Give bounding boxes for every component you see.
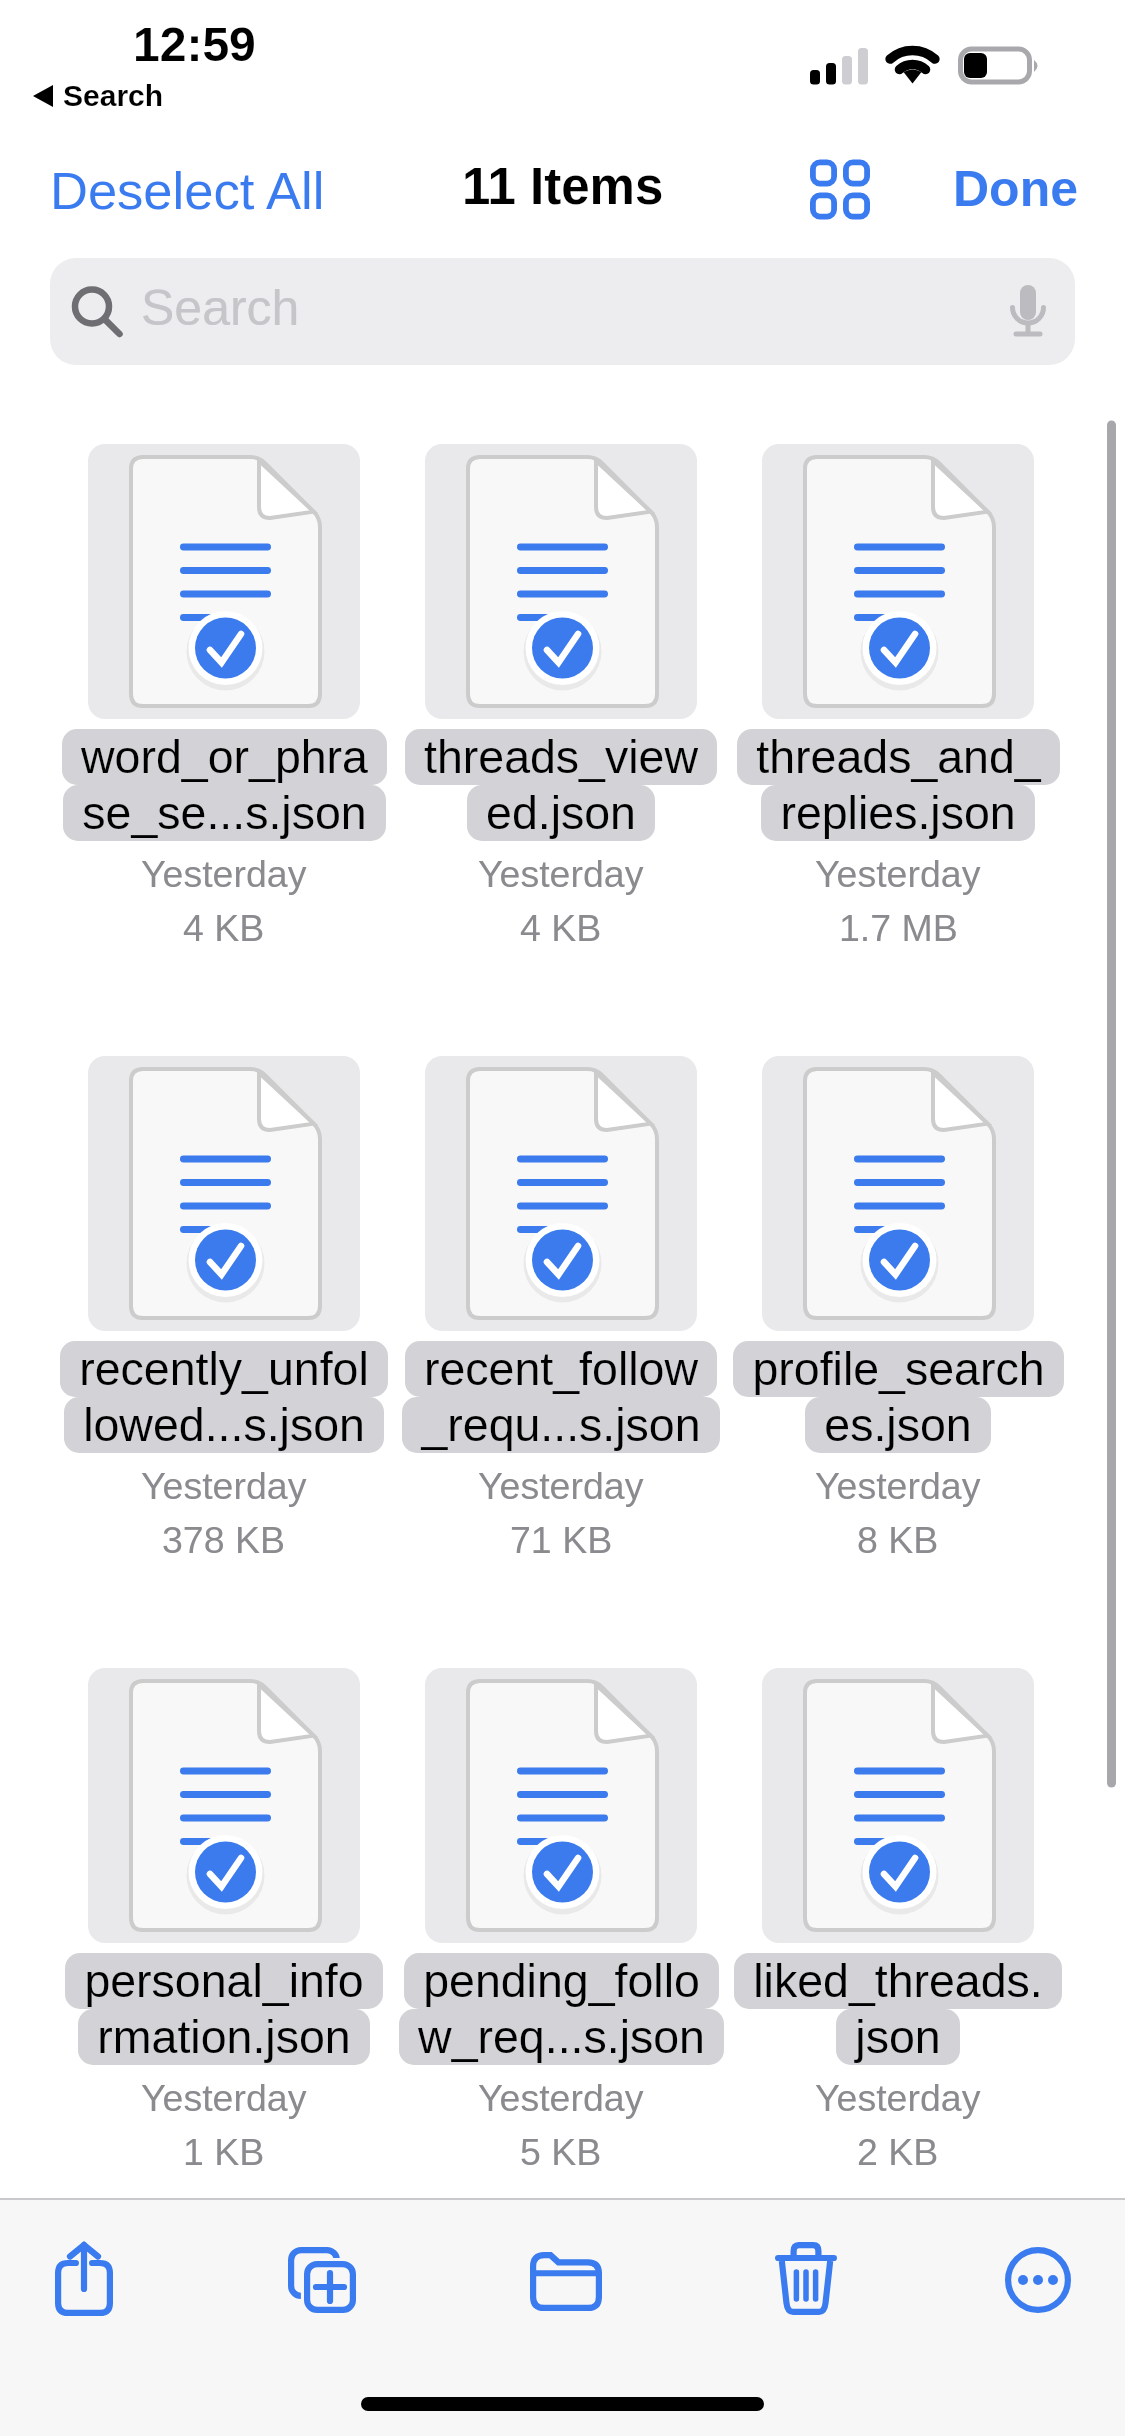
button[interactable]: recently_unfol (28, 1056, 420, 1561)
staticText: _requ...s.json (421, 1399, 701, 1451)
button[interactable]: recent_follow (365, 1056, 757, 1561)
button[interactable]: Switch to grid view (785, 140, 895, 238)
staticText: ed.json (486, 787, 636, 839)
staticText: Yesterday (815, 2077, 981, 2119)
staticText: Done (953, 161, 1078, 217)
staticText: recently_unfol (79, 1343, 369, 1395)
staticText: 71 KB (510, 1519, 613, 1561)
staticText: word_or_phra (81, 731, 368, 783)
staticText: 12:59 (133, 18, 256, 72)
staticText: Search (141, 280, 300, 336)
staticText: Yesterday (815, 1465, 981, 1507)
staticText: rmation.json (97, 2011, 351, 2063)
staticText: Yesterday (815, 853, 981, 895)
staticText: w_req...s.json (418, 2011, 705, 2063)
staticText: se_se...s.json (82, 787, 367, 839)
staticText: es.json (824, 1399, 972, 1451)
button[interactable]: threads_and_ (702, 444, 1094, 949)
staticText: Yesterday (478, 2077, 644, 2119)
button[interactable]: personal_info (28, 1668, 420, 2173)
staticText: Yesterday (141, 853, 307, 895)
button[interactable]: word_or_phra (28, 444, 420, 949)
button[interactable]: Duplicate (258, 2222, 386, 2338)
button[interactable]: Deselect All (50, 161, 325, 220)
staticText: Yesterday (478, 1465, 644, 1507)
button[interactable]: More (974, 2222, 1102, 2338)
staticText: recent_follow (424, 1343, 698, 1395)
staticText: lowed...s.json (83, 1399, 365, 1451)
staticText: 8 KB (857, 1519, 939, 1561)
staticText: 4 KB (183, 907, 265, 949)
button[interactable]: threads_view (365, 444, 757, 949)
button[interactable]: Share (20, 2221, 148, 2337)
button[interactable]: Dictate (994, 267, 1062, 355)
staticText: profile_search (752, 1343, 1045, 1395)
staticText: Yesterday (141, 2077, 307, 2119)
staticText: Search (63, 79, 164, 113)
staticText: Deselect All (50, 161, 325, 220)
button[interactable]: Search (50, 258, 1075, 365)
staticText: personal_info (84, 1955, 364, 2007)
staticText: 1 KB (183, 2131, 265, 2173)
staticText: 5 KB (520, 2131, 602, 2173)
staticText: liked_threads. (753, 1955, 1043, 2007)
staticText: json (855, 2011, 941, 2063)
staticText: pending_follo (423, 1955, 700, 2007)
staticText: 2 KB (857, 2131, 939, 2173)
button[interactable]: Delete (742, 2220, 870, 2336)
staticText: 378 KB (162, 1519, 286, 1561)
staticText: Yesterday (478, 853, 644, 895)
button[interactable]: pending_follo (365, 1668, 757, 2173)
button[interactable]: profile_search (702, 1056, 1094, 1561)
staticText: 1.7 MB (839, 907, 958, 949)
staticText: Yesterday (141, 1465, 307, 1507)
button[interactable]: Move to folder (502, 2223, 630, 2339)
button[interactable]: liked_threads. (702, 1668, 1094, 2173)
button[interactable]: Done (953, 161, 1078, 217)
staticText: replies.json (780, 787, 1016, 839)
staticText: 11 Items (462, 158, 664, 215)
staticText: threads_and_ (756, 731, 1041, 783)
staticText: 4 KB (520, 907, 602, 949)
staticText: threads_view (424, 731, 698, 783)
